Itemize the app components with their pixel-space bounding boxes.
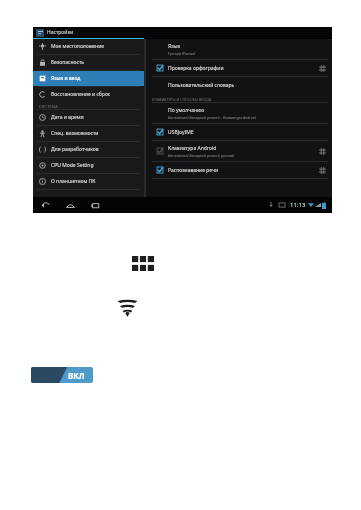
button[interactable]: Мое местоположение: [33, 39, 144, 54]
staticText: Язык: [168, 43, 181, 50]
button[interactable]: Пользовательский словарь: [152, 77, 328, 93]
button[interactable]: Recents: [89, 199, 102, 212]
button[interactable]: Язык: [152, 39, 328, 59]
staticText: Мое местоположение: [51, 43, 105, 50]
staticText: Клавиатура Android: [168, 145, 217, 152]
staticText: Английский (Западный регион) – Клавиатур…: [168, 115, 256, 120]
button[interactable]: ВКЛ: [31, 367, 93, 383]
staticText: Настройки: [47, 29, 74, 36]
staticText: Русский (Россия): [168, 51, 196, 56]
staticText: О планшетном ПК: [51, 178, 96, 185]
staticText: Безопасность: [51, 59, 85, 66]
button[interactable]: Settings: [316, 164, 328, 176]
staticText: Спец. возможности: [51, 130, 99, 137]
staticText: Дата и время: [51, 114, 84, 121]
staticText: Пользовательский словарь: [168, 82, 235, 89]
staticText: СИСТЕМА: [39, 104, 58, 109]
staticText: По умолчанию: [168, 107, 205, 114]
button[interactable]: Home: [64, 199, 77, 212]
staticText: Язык и ввод: [51, 75, 81, 82]
button[interactable]: Распознавание речи: [152, 162, 328, 178]
button[interactable]: USBJoyIME: [152, 124, 328, 140]
button[interactable]: Восстановление и сброс: [33, 87, 144, 102]
staticText: 11:13: [290, 201, 306, 209]
button[interactable]: Settings: [316, 62, 328, 74]
staticText: КЛАВИАТУРЫ И СПОСОБЫ ВВОДА: [152, 97, 212, 102]
button[interactable]: Безопасность: [33, 55, 144, 70]
button[interactable]: Клавиатура Android: [152, 141, 328, 161]
button[interactable]: Back: [39, 199, 52, 212]
button[interactable]: Проверка орфографии: [152, 60, 328, 76]
staticText: Распознавание речи: [168, 167, 219, 174]
button[interactable]: Для разработчиков: [33, 142, 144, 157]
button[interactable]: О планшетном ПК: [33, 174, 144, 189]
staticText: Восстановление и сброс: [51, 91, 111, 98]
button[interactable]: По умолчанию: [152, 103, 328, 123]
button[interactable]: Wi-Fi: [112, 293, 142, 323]
button[interactable]: Дата и время: [33, 110, 144, 125]
staticText: USBJoyIME: [168, 129, 194, 136]
button[interactable]: CPU Mode Setting: [33, 158, 144, 173]
staticText: CPU Mode Setting: [51, 162, 94, 169]
button[interactable]: Спец. возможности: [33, 126, 144, 141]
staticText: Английский (Западный регион), русский: [168, 153, 235, 158]
button[interactable]: Язык и ввод: [33, 71, 144, 86]
staticText: Проверка орфографии: [168, 65, 224, 72]
button[interactable]: Settings: [316, 145, 328, 157]
staticText: Для разработчиков: [51, 146, 99, 153]
staticText: ВКЛ: [68, 370, 85, 381]
button[interactable]: Apps: [129, 249, 157, 277]
